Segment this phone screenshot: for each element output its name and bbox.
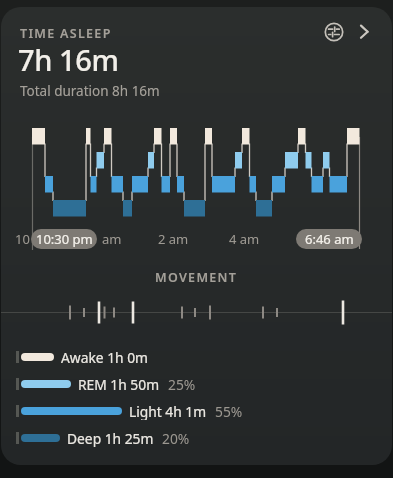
staticText: 25%: [168, 375, 196, 393]
staticText: Deep 1h 25m: [67, 429, 154, 447]
button[interactable]: [320, 18, 348, 46]
staticText: 7h 16m: [18, 40, 119, 79]
button[interactable]: Light 4h 1m: [16, 402, 243, 420]
staticText: 10:30 pm: [36, 230, 93, 248]
staticText: am: [102, 230, 122, 248]
staticText: 6:46 am: [305, 230, 354, 248]
button[interactable]: [353, 18, 381, 46]
button[interactable]: Awake 1h 0m: [16, 348, 148, 366]
button[interactable]: REM 1h 50m: [16, 375, 196, 393]
staticText: 2 am: [158, 230, 189, 248]
staticText: 10: [15, 230, 30, 248]
button[interactable]: TIME ASLEEP: [1, 7, 392, 465]
staticText: Awake 1h 0m: [61, 348, 148, 366]
button[interactable]: Deep 1h 25m: [16, 429, 190, 447]
staticText: 4 am: [229, 230, 260, 248]
staticText: REM 1h 50m: [78, 375, 160, 393]
button[interactable]: 10:30 pm: [31, 229, 97, 249]
staticText: MOVEMENT: [155, 269, 238, 286]
staticText: Light 4h 1m: [129, 402, 207, 420]
button[interactable]: 6:46 am: [296, 229, 362, 249]
staticText: Total duration 8h 16m: [20, 82, 160, 100]
staticText: 55%: [215, 402, 243, 420]
staticText: 20%: [162, 429, 190, 447]
staticText: TIME ASLEEP: [20, 25, 112, 42]
